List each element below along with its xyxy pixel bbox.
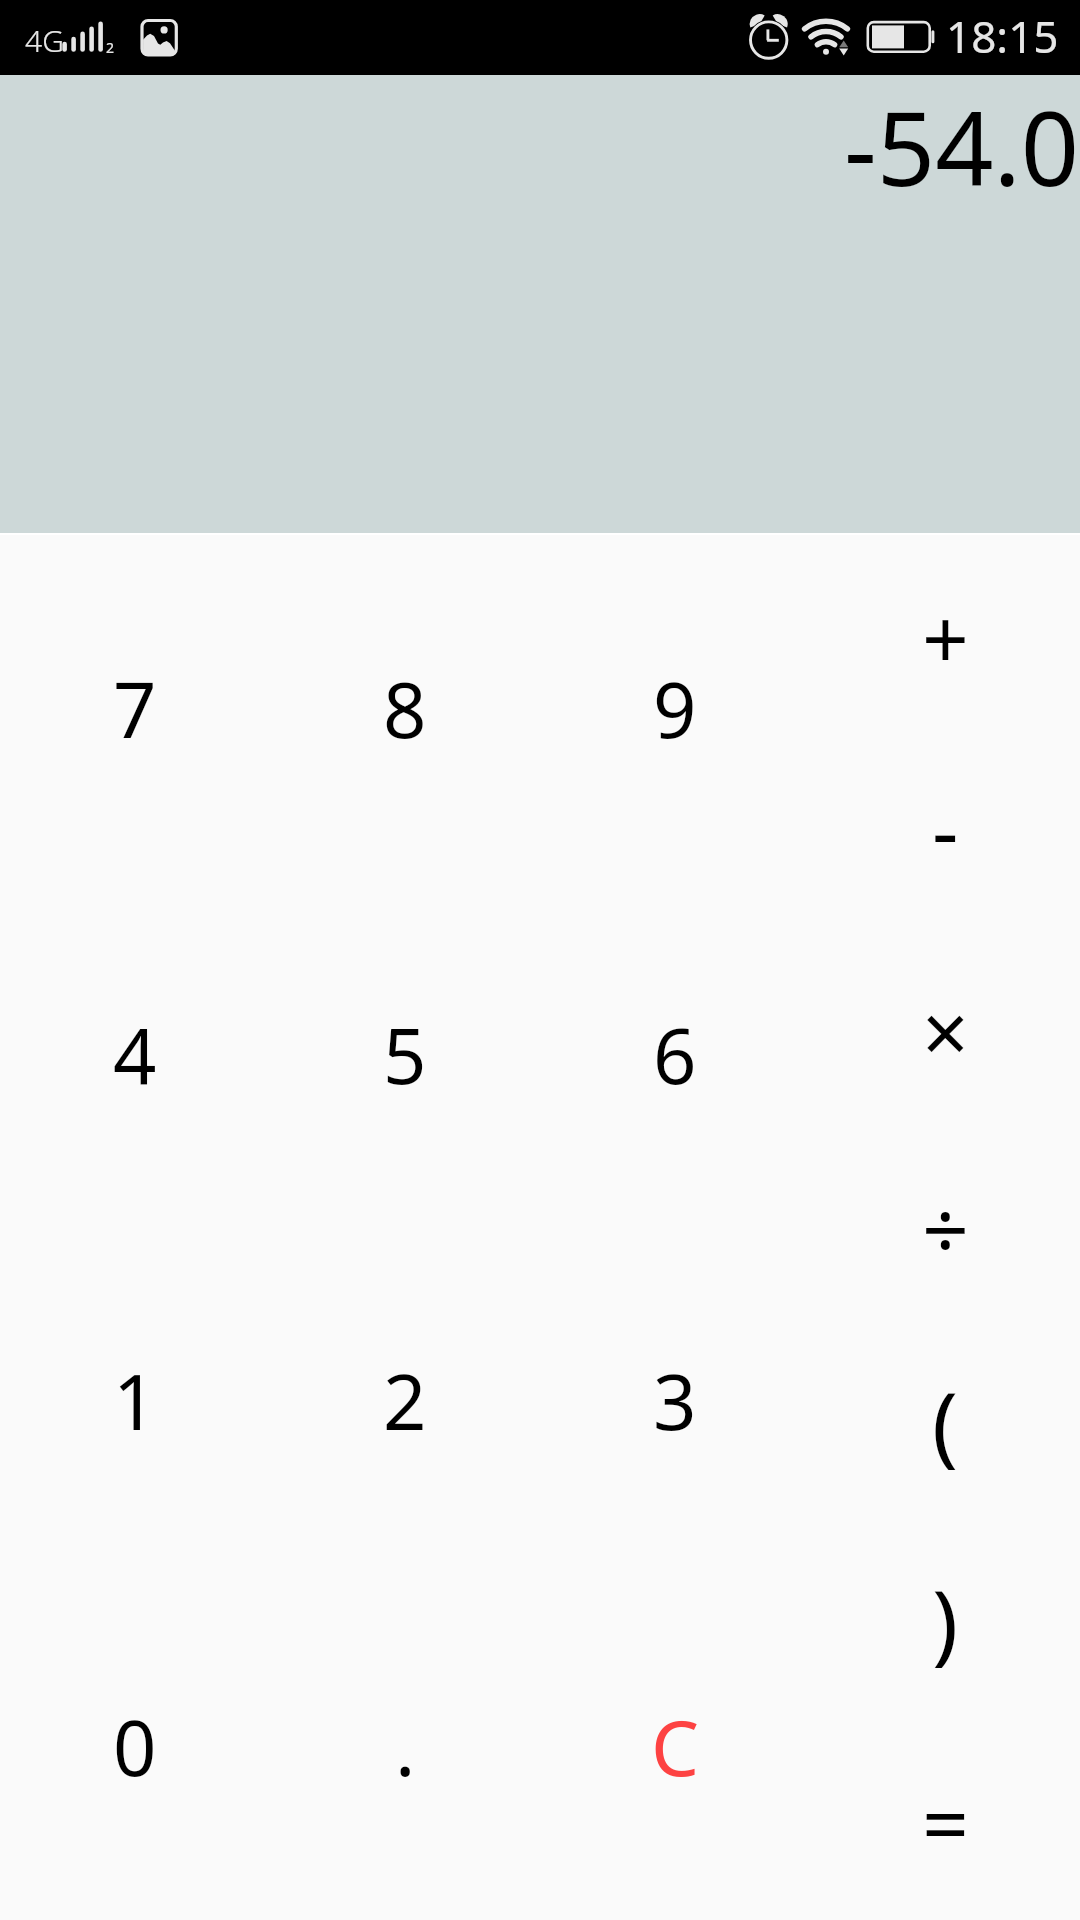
button[interactable]: 0 [0, 1574, 270, 1920]
staticText: 4G [25, 20, 64, 61]
button[interactable]: 6 [540, 882, 810, 1228]
button[interactable]: Equals [810, 1722, 1080, 1920]
button[interactable]: 7 [0, 535, 270, 882]
staticText: = [922, 1766, 969, 1878]
staticText: 0 [113, 1695, 157, 1799]
staticText: 5 [383, 1003, 427, 1107]
staticText: -54.0 [844, 77, 1080, 216]
staticText: 18:15 [946, 6, 1059, 66]
staticText: C [651, 1695, 700, 1799]
staticText: 6 [653, 1003, 697, 1107]
staticText: 8 [383, 657, 427, 761]
button[interactable]: 8 [270, 535, 540, 882]
staticText: × [922, 975, 969, 1087]
staticText: ÷ [922, 1172, 969, 1284]
button[interactable]: C [540, 1574, 810, 1920]
button[interactable]: 1 [0, 1228, 270, 1574]
staticText: 1 [113, 1349, 157, 1453]
staticText: 9 [653, 657, 697, 761]
button[interactable]: Plus [810, 535, 1080, 732]
button[interactable]: 9 [540, 535, 810, 882]
staticText: - [932, 773, 959, 885]
staticText: 3 [653, 1349, 697, 1453]
staticText: ) [932, 1561, 959, 1679]
button[interactable]: Divide [810, 1128, 1080, 1326]
button[interactable]: 2 [270, 1228, 540, 1574]
staticText: 7 [113, 657, 157, 761]
button[interactable]: Close parenthesis [810, 1524, 1080, 1722]
button[interactable]: 5 [270, 882, 540, 1228]
staticText: 4 [113, 1003, 157, 1107]
staticText: + [922, 581, 969, 693]
button[interactable]: Minus [810, 732, 1080, 930]
button[interactable]: Multiply [810, 930, 1080, 1128]
staticText: 2 [383, 1349, 427, 1453]
staticText: ( [932, 1363, 959, 1481]
button[interactable]: 3 [540, 1228, 810, 1574]
button[interactable]: . [270, 1574, 540, 1920]
button[interactable]: 4 [0, 882, 270, 1228]
button[interactable]: Open parenthesis [810, 1326, 1080, 1524]
staticText: 2 [106, 38, 115, 57]
staticText: . [395, 1695, 416, 1799]
